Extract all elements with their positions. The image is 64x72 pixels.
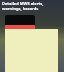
staticText: warnings, hazards bbox=[2, 6, 39, 11]
staticText: Detailed MWS alerts, bbox=[2, 1, 44, 6]
